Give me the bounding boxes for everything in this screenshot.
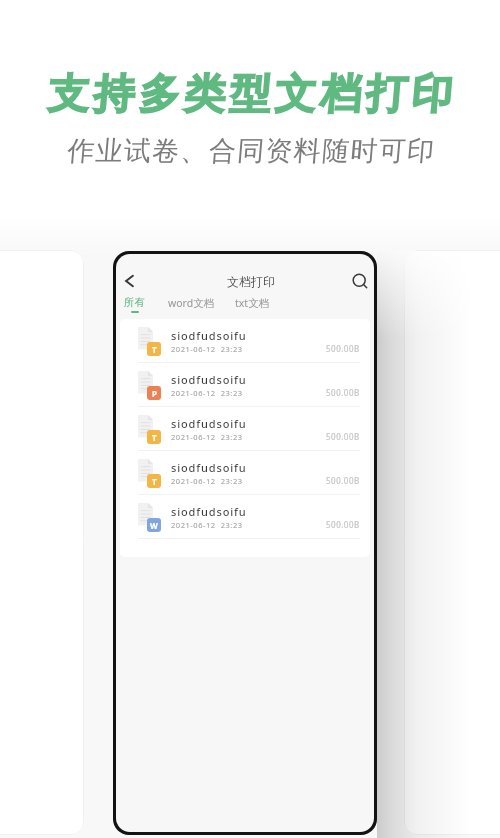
staticText: siodfudsoifu xyxy=(171,328,247,343)
staticText: 500.00B xyxy=(326,387,360,398)
staticText: P xyxy=(152,388,157,399)
button[interactable]: word文档 xyxy=(166,296,217,310)
staticText: 文档打印 xyxy=(227,274,275,289)
staticText: W xyxy=(150,520,158,531)
staticText: word文档 xyxy=(168,296,215,310)
staticText: T xyxy=(152,344,157,355)
staticText: txt文档 xyxy=(235,296,270,310)
button[interactable]: txt文档 xyxy=(233,296,272,310)
button[interactable]: T xyxy=(120,407,370,451)
staticText: siodfudsoifu xyxy=(171,504,247,519)
button[interactable]: Back xyxy=(117,269,141,293)
staticText: 作业试卷、合同资料随时可印 xyxy=(66,134,434,168)
staticText: 2021-06-12 23:23 xyxy=(171,344,243,354)
staticText: 500.00B xyxy=(326,431,360,442)
button[interactable]: 所有 xyxy=(122,296,147,313)
staticText: T xyxy=(152,432,157,443)
staticText: 500.00B xyxy=(326,343,360,354)
staticText: 所有 xyxy=(124,296,145,309)
staticText: 2021-06-12 23:23 xyxy=(171,388,243,398)
staticText: siodfudsoifu xyxy=(171,372,247,387)
button[interactable]: Search xyxy=(348,269,372,293)
staticText: 500.00B xyxy=(326,519,360,530)
staticText: 2021-06-12 23:23 xyxy=(171,432,243,442)
button[interactable]: W xyxy=(120,495,370,539)
staticText: 2021-06-12 23:23 xyxy=(171,476,243,486)
staticText: 500.00B xyxy=(326,475,360,486)
staticText: 支持多类型文档打印 xyxy=(46,69,455,121)
button[interactable]: T xyxy=(120,319,370,363)
staticText: 2021-06-12 23:23 xyxy=(171,520,243,530)
button[interactable]: T xyxy=(120,451,370,495)
staticText: T xyxy=(152,476,157,487)
staticText: siodfudsoifu xyxy=(171,416,247,431)
staticText: siodfudsoifu xyxy=(171,460,247,475)
button[interactable]: P xyxy=(120,363,370,407)
